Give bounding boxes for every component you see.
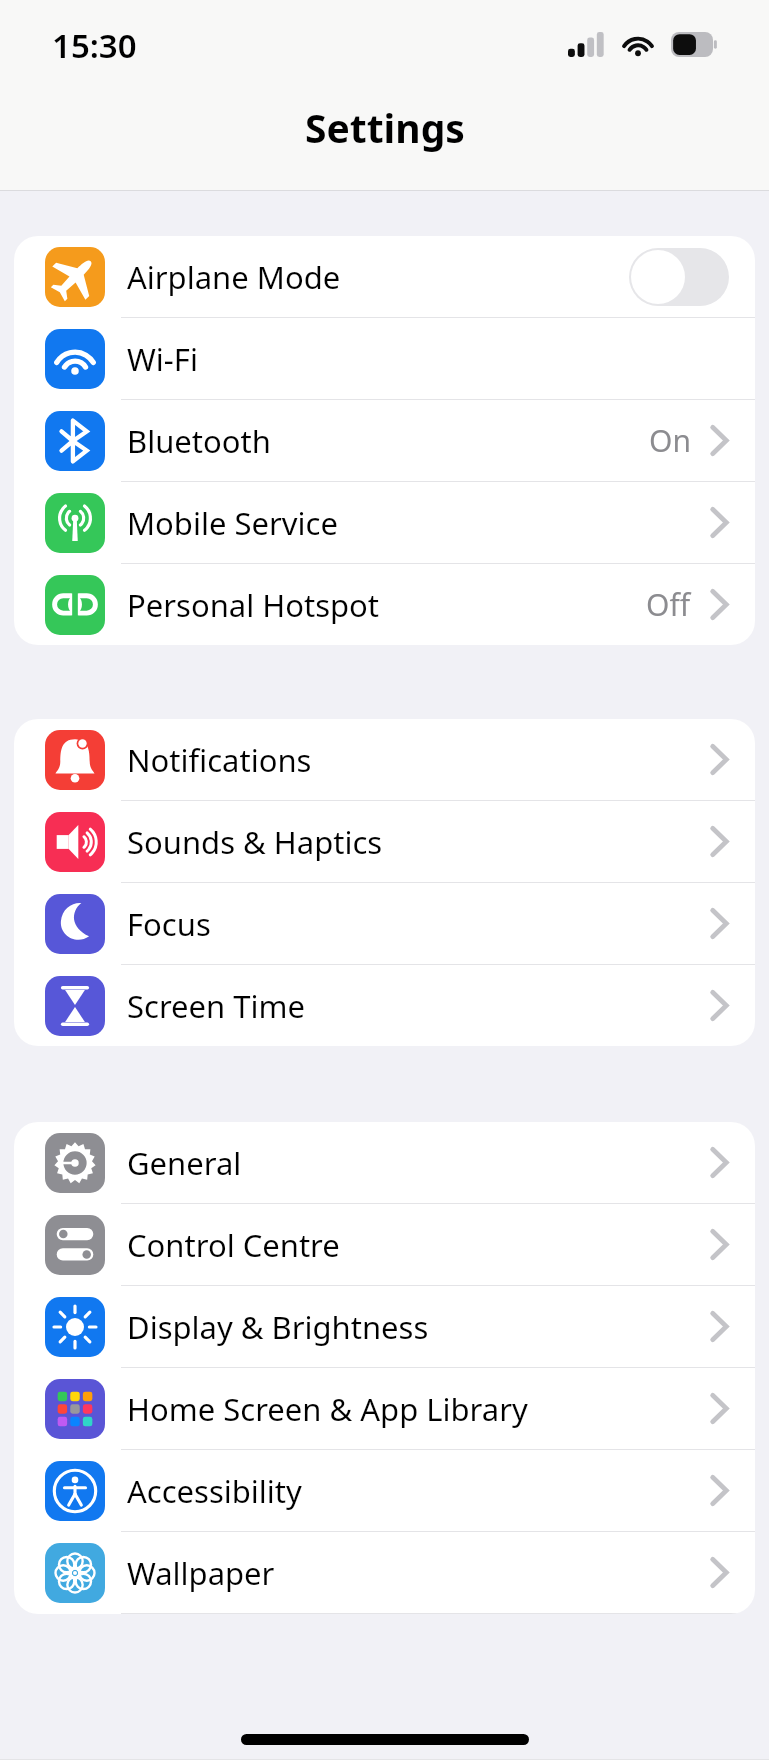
staticText: Sounds & Haptics (127, 821, 383, 863)
button[interactable]: Control Centre (14, 1204, 755, 1286)
staticText: Off (646, 584, 691, 625)
button[interactable]: Mobile Service (14, 482, 755, 564)
button[interactable]: General (14, 1122, 755, 1204)
button[interactable]: Airplane Mode toggle (629, 248, 729, 306)
staticText: Accessibility (127, 1470, 302, 1512)
button[interactable]: Focus (14, 883, 755, 965)
button[interactable]: Sounds & Haptics (14, 801, 755, 883)
staticText: Wallpaper (127, 1552, 275, 1594)
button[interactable]: Personal Hotspot (14, 564, 755, 645)
staticText: General (127, 1142, 242, 1184)
button[interactable]: Bluetooth (14, 400, 755, 482)
staticText: Bluetooth (127, 420, 271, 462)
staticText: On (649, 420, 691, 461)
staticText: Control Centre (127, 1224, 340, 1266)
button[interactable]: Home Screen & App Library (14, 1368, 755, 1450)
button[interactable]: Notifications (14, 719, 755, 801)
button[interactable]: Airplane Mode (14, 236, 755, 318)
button[interactable]: Accessibility (14, 1450, 755, 1532)
button[interactable]: Screen Time (14, 965, 755, 1046)
staticText: Display & Brightness (127, 1306, 429, 1348)
staticText: Mobile Service (127, 502, 338, 544)
staticText: Settings (305, 101, 465, 154)
staticText: Notifications (127, 739, 312, 781)
staticText: Focus (127, 903, 211, 945)
button[interactable]: Display & Brightness (14, 1286, 755, 1368)
staticText: Wi-Fi (127, 338, 198, 380)
button[interactable]: Wallpaper (14, 1532, 755, 1614)
button[interactable]: Wi-Fi (14, 318, 755, 400)
staticText: Airplane Mode (127, 256, 341, 298)
staticText: Home Screen & App Library (127, 1388, 528, 1430)
staticText: Personal Hotspot (127, 584, 380, 626)
staticText: Screen Time (127, 985, 305, 1027)
staticText: 15:30 (52, 23, 137, 68)
